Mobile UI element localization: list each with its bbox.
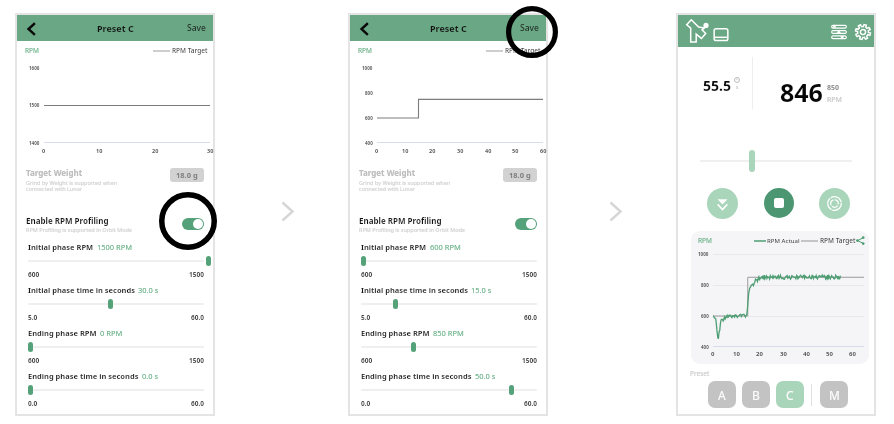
staticText: RPM — [358, 46, 372, 55]
staticText: RPM Target — [172, 46, 208, 55]
staticText: C — [786, 387, 794, 403]
staticText: Initial phase RPM — [28, 242, 94, 252]
staticText: RPM — [698, 236, 712, 245]
staticText: B — [752, 387, 760, 403]
button[interactable]: Back — [355, 20, 372, 37]
staticText: 60.0 — [524, 313, 537, 322]
staticText: Preset C — [97, 22, 134, 34]
button[interactable]: Save — [187, 22, 206, 34]
staticText: 50 — [512, 147, 519, 154]
staticText: Preset — [690, 369, 710, 378]
staticText: 846 — [780, 75, 823, 109]
staticText: 850 RPM — [433, 328, 464, 338]
button[interactable]: A — [708, 381, 736, 408]
staticText: 5.0 — [28, 313, 38, 322]
button[interactable]: Save — [520, 22, 539, 34]
staticText: 18.0 g — [509, 170, 531, 180]
staticText: A — [718, 387, 726, 403]
button[interactable]: B — [742, 381, 770, 408]
staticText: 10 — [402, 147, 409, 154]
staticText: 800 — [365, 90, 373, 96]
staticText: 30 — [457, 147, 464, 154]
button[interactable] — [28, 342, 33, 352]
button[interactable]: Enable RPM Profiling — [182, 218, 204, 230]
button[interactable]: Stop — [764, 188, 794, 218]
staticText: 600 — [28, 356, 40, 365]
staticText: Initial phase time in seconds — [28, 285, 135, 295]
staticText: 10 — [96, 147, 103, 154]
staticText: Ending phase time in seconds — [28, 371, 139, 381]
staticText: 800 — [701, 282, 709, 288]
staticText: 50.0 s — [475, 371, 496, 381]
staticText: Enable RPM Profiling — [26, 215, 109, 226]
button[interactable] — [206, 256, 211, 266]
staticText: 600 — [361, 270, 373, 279]
staticText: 40 — [803, 350, 810, 358]
staticText: 60.0 — [524, 399, 537, 408]
button[interactable]: Back — [22, 20, 39, 37]
button[interactable] — [411, 342, 416, 352]
staticText: 50 — [826, 350, 833, 358]
staticText: RPM Target — [505, 46, 541, 55]
staticText: Save — [520, 22, 539, 34]
staticText: 15.0 s — [471, 285, 492, 295]
staticText: Ending phase RPM — [28, 328, 97, 338]
staticText: 1500 — [29, 102, 40, 108]
button[interactable]: Decrease — [707, 188, 738, 219]
staticText: Save — [187, 22, 206, 34]
staticText: 0 — [711, 350, 715, 358]
staticText: RPM Profiling is supported in Orbit Mode — [26, 226, 132, 233]
button[interactable] — [28, 385, 33, 395]
staticText: 60 — [849, 350, 856, 358]
staticText: 1500 — [189, 356, 204, 365]
staticText: 600 RPM — [430, 242, 461, 252]
staticText: Grind by Weight is supported when connec… — [359, 179, 451, 193]
button[interactable] — [393, 299, 398, 309]
staticText: 18.0 g — [176, 170, 198, 180]
staticText: Target Weight — [26, 167, 83, 178]
staticText: 0.0 — [361, 399, 371, 408]
staticText: 600 — [361, 356, 373, 365]
button[interactable]: Tune — [831, 24, 847, 40]
staticText: 0.0 s — [142, 371, 159, 381]
button[interactable]: Settings — [855, 24, 871, 40]
staticText: 1400 — [29, 140, 40, 146]
staticText: 1500 — [189, 270, 204, 279]
button[interactable]: 18.0 g — [170, 168, 204, 182]
button[interactable] — [509, 385, 514, 395]
staticText: 850 — [827, 83, 840, 93]
staticText: 0 — [375, 147, 379, 154]
staticText: 1500 — [522, 270, 537, 279]
button[interactable] — [108, 299, 113, 309]
staticText: 0.0 — [28, 399, 38, 408]
button[interactable]: Share — [856, 236, 865, 245]
staticText: Ending phase time in seconds — [361, 371, 472, 381]
staticText: Grind by Weight is supported when connec… — [26, 179, 118, 193]
staticText: 1000 — [698, 251, 709, 257]
button[interactable]: Reset — [819, 188, 850, 219]
staticText: 600 — [365, 115, 373, 121]
staticText: 1500 RPM — [97, 242, 133, 252]
staticText: 40 — [485, 147, 492, 154]
button[interactable]: Grinder — [686, 19, 710, 43]
staticText: M — [829, 387, 840, 403]
staticText: 30 — [780, 350, 787, 358]
staticText: 60.0 — [191, 313, 204, 322]
staticText: 30 — [207, 147, 214, 154]
staticText: 1500 — [522, 356, 537, 365]
staticText: RPM Actual — [767, 237, 800, 245]
staticText: 20 — [429, 147, 436, 154]
staticText: 10 — [733, 350, 740, 358]
button[interactable]: RPM slider — [749, 150, 755, 172]
staticText: 1000 — [362, 65, 373, 71]
button[interactable] — [361, 256, 366, 266]
staticText: 0 RPM — [100, 328, 123, 338]
button[interactable]: C — [776, 381, 804, 408]
staticText: Initial phase RPM — [361, 242, 427, 252]
button[interactable]: M — [820, 381, 848, 408]
button[interactable]: Enable RPM Profiling — [515, 218, 537, 230]
button[interactable]: 18.0 g — [503, 168, 537, 182]
staticText: RPM Target — [820, 236, 856, 245]
staticText: s — [736, 84, 739, 91]
button[interactable]: Scale — [712, 24, 730, 42]
